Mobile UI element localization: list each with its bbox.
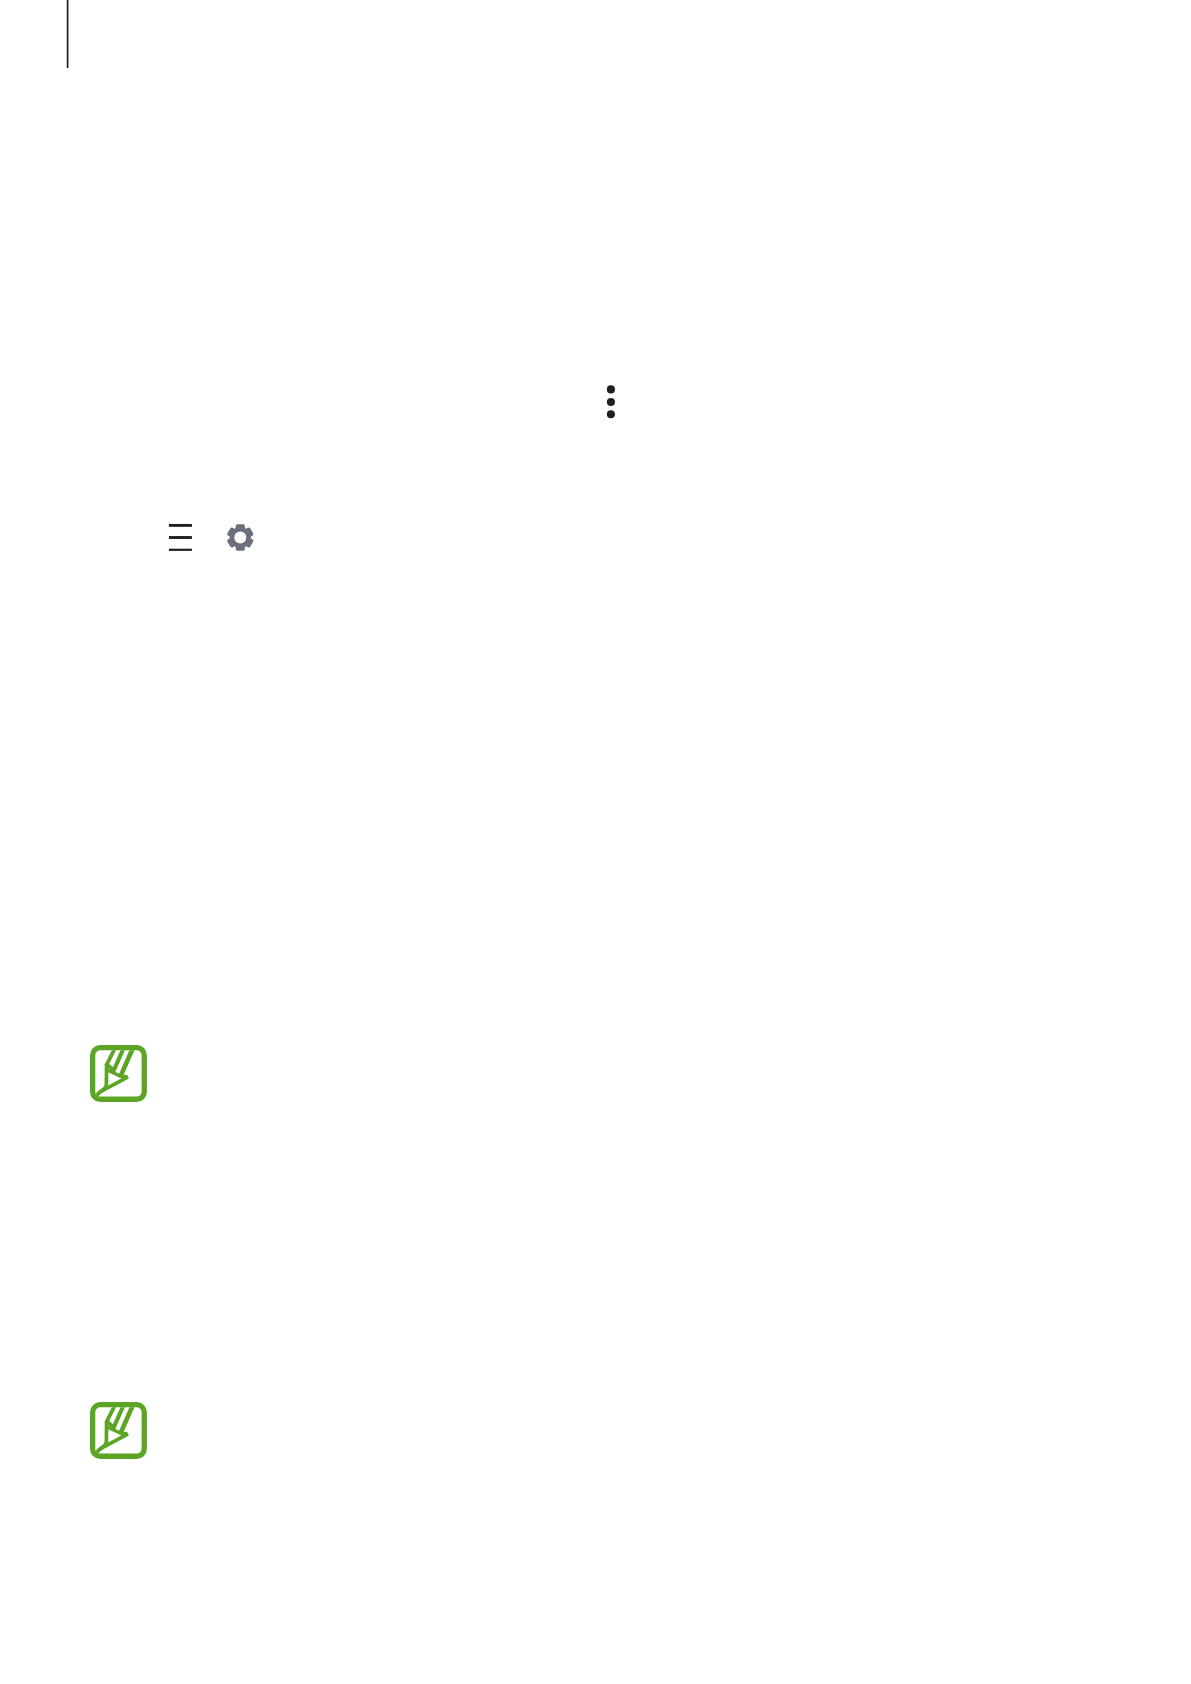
- button[interactable]: Open navigation menu: [157, 514, 203, 560]
- button[interactable]: Samsung Notes: [90, 1402, 147, 1459]
- button[interactable]: Samsung Notes: [90, 1045, 147, 1102]
- button[interactable]: More options: [593, 373, 629, 409]
- button[interactable]: Settings: [222, 519, 259, 556]
